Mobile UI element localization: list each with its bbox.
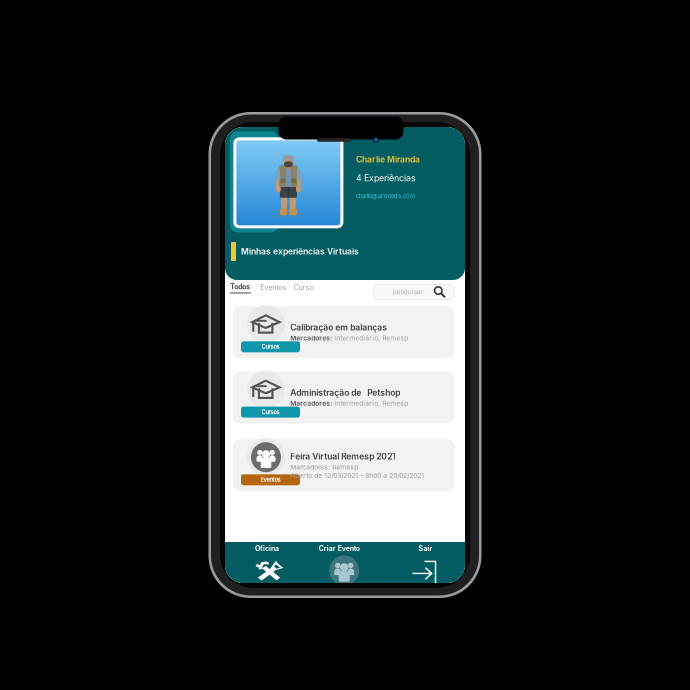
staticText: Administração de Petshop <box>290 388 400 398</box>
button[interactable]: Sair <box>408 559 440 585</box>
staticText: Oficina <box>255 544 279 553</box>
staticText: Sair <box>418 544 432 553</box>
staticText: Marcadores: <box>290 399 334 407</box>
staticText: Minhas experiências Virtuais <box>241 246 359 257</box>
button[interactable]: Criar Evento <box>329 555 359 585</box>
staticText: Aberto de 12/03/2021 - 8h00 a 20/02/2021 <box>290 472 424 480</box>
button[interactable]: Sair <box>405 542 445 554</box>
staticText: Marcadores: Remesp <box>290 463 358 471</box>
staticText: charlie@arxmeds.com <box>356 192 415 200</box>
staticText: Marcadores: <box>290 334 334 342</box>
staticText: Curso <box>294 283 314 292</box>
staticText: Eventos <box>260 476 280 483</box>
staticText: Eventos <box>260 283 286 292</box>
button[interactable]: Todos <box>227 281 254 295</box>
staticText: Criar Evento <box>319 544 360 553</box>
staticText: pesquisar <box>393 288 423 296</box>
staticText: Feira Virtual Remesp 2021 <box>290 451 396 462</box>
button[interactable]: Eventos <box>257 280 289 295</box>
staticText: Cursos <box>261 409 279 415</box>
button[interactable]: Criar Evento <box>304 542 374 554</box>
button[interactable]: Oficina <box>248 557 292 583</box>
staticText: Calibração em balanças <box>290 322 387 333</box>
button[interactable]: pesquisar <box>374 284 454 299</box>
staticText: Charlie Miranda <box>356 154 420 165</box>
staticText: Intermediário, Remesp <box>334 334 408 342</box>
button[interactable]: Oficina <box>237 542 297 554</box>
button[interactable]: Cursos <box>233 371 454 423</box>
button[interactable]: Curso <box>291 280 317 295</box>
button[interactable]: Cursos <box>233 306 454 358</box>
staticText: 4 Experiências <box>356 173 416 183</box>
staticText: Intermediário, Remesp <box>334 399 408 407</box>
staticText: Cursos <box>261 343 279 350</box>
button[interactable]: Eventos <box>233 439 454 491</box>
staticText: Todos <box>230 283 250 291</box>
